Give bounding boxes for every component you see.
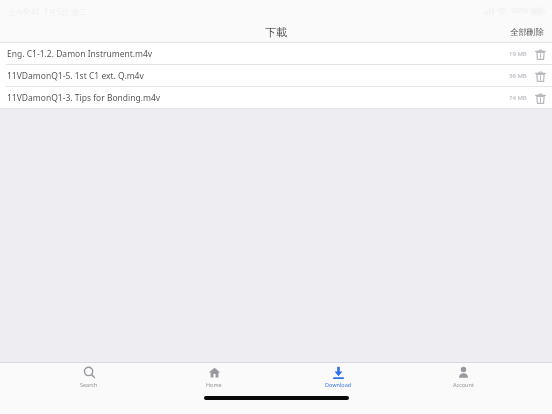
staticText: Account: [453, 381, 474, 388]
staticText: Eng. C1-1.2. Damon Instrument.m4v: [7, 48, 153, 60]
button[interactable]: Home: [179, 366, 249, 393]
button[interactable]: Eng. C1-1.2. Damon Instrument.m4v: [0, 43, 552, 64]
button[interactable]: Delete: [532, 46, 548, 62]
button[interactable]: 11VDamonQ1-3. Tips for Bonding.m4v: [0, 87, 552, 108]
button[interactable]: Delete: [532, 90, 548, 106]
button[interactable]: Delete: [532, 68, 548, 84]
button[interactable]: Download: [303, 366, 373, 393]
staticText: 36 MB: [509, 72, 527, 80]
button[interactable]: Account: [428, 366, 498, 393]
staticText: 11VDamonQ1-5. 1st C1 ext. Q.m4v: [7, 70, 144, 82]
staticText: 74 MB: [509, 94, 527, 102]
staticText: 全部刪除: [510, 27, 544, 38]
button[interactable]: 全部刪除: [502, 24, 552, 41]
staticText: Home: [206, 381, 222, 388]
staticText: 19 MB: [509, 50, 527, 58]
staticText: Search: [80, 381, 98, 388]
staticText: 下載: [265, 25, 287, 39]
staticText: 11VDamonQ1-3. Tips for Bonding.m4v: [7, 92, 161, 104]
button[interactable]: Search: [54, 366, 124, 393]
button[interactable]: 11VDamonQ1-5. 1st C1 ext. Q.m4v: [0, 65, 552, 86]
staticText: Download: [325, 381, 352, 388]
